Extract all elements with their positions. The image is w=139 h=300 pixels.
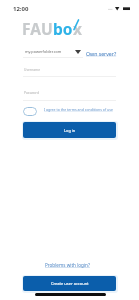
button[interactable]: Log in [23,122,116,138]
other: Signal, wifi and battery status [108,6,131,12]
button[interactable]: I agree to the terms and conditions of u… [44,107,113,112]
staticText: Log in [64,128,76,133]
button[interactable]: Accept terms and conditions [23,107,37,116]
staticText: Create user account [51,281,89,286]
staticText: x [73,18,82,39]
staticText: bo [53,18,73,39]
staticText: Username [24,67,41,71]
button[interactable]: Problems with login? [45,262,90,268]
staticText: FAU [22,18,53,39]
staticText: my.powerfolder.com [25,49,62,54]
button[interactable]: Own server? [86,50,117,57]
button[interactable]: Choose server [75,50,81,54]
button[interactable]: Create user account [23,276,116,291]
staticText: Password [24,90,39,94]
staticText: 12:00 [13,5,29,13]
